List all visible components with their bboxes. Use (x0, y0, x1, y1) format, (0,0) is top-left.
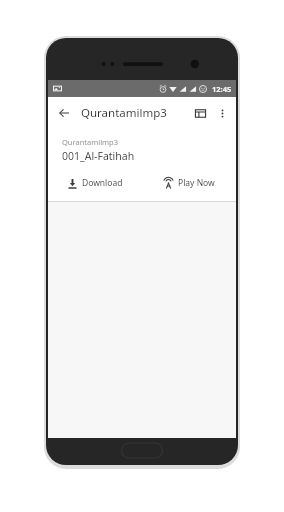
staticText: Qurantamilmp3 (62, 137, 118, 147)
staticText: Download (82, 177, 123, 189)
button[interactable]: Download (48, 174, 142, 192)
button[interactable]: More options (211, 102, 233, 124)
staticText: 001_Al-Fatihah (62, 149, 135, 163)
staticText: Qurantamilmp3 (81, 105, 167, 121)
staticText: Play Now (178, 177, 215, 189)
button[interactable]: Play Now (142, 174, 236, 192)
button[interactable]: Layout (189, 102, 211, 124)
staticText: 12:45 (212, 84, 232, 94)
button[interactable]: Back (53, 102, 75, 124)
